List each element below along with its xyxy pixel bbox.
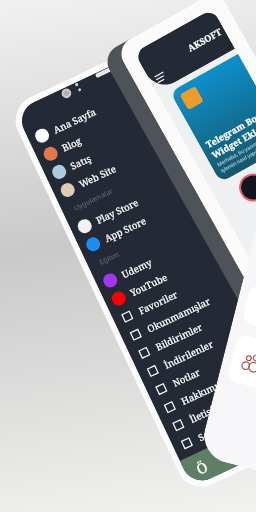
button[interactable]: Blog — [34, 70, 214, 169]
button[interactable]: Telegram Bot Widget Eklenti — [170, 54, 256, 183]
staticText: İndirilenler — [162, 337, 215, 372]
button[interactable]: Web Site — [51, 106, 231, 205]
staticText: Play Store — [94, 196, 141, 227]
button[interactable]: İletişim — [161, 341, 256, 440]
staticText: İletişim — [188, 399, 225, 426]
staticText: Bildirimler — [153, 320, 205, 354]
staticText: Blog — [60, 134, 83, 155]
button[interactable]: Hakkımızda — [153, 323, 256, 422]
staticText: Telegram Bot Widget Eklenti — [203, 106, 256, 161]
staticText: Udemy — [119, 256, 154, 281]
button[interactable]: Ö — [180, 380, 256, 487]
button[interactable]: İndirilenler — [136, 287, 256, 386]
button[interactable]: Notlar — [144, 305, 256, 404]
staticText: YouTube — [128, 271, 170, 299]
staticText: Uygulamalar — [72, 186, 115, 213]
button[interactable]: Story — [234, 168, 256, 206]
button[interactable]: Sosyal — [170, 359, 256, 458]
staticText: Satış — [68, 151, 94, 173]
staticText: Merhaba, bu yazımızda işlemin nasıl yapı… — [216, 135, 256, 175]
button[interactable]: Open menu — [151, 68, 170, 87]
button[interactable]: Ana Sayfa — [25, 52, 206, 151]
staticText: Eğitim — [98, 250, 121, 268]
staticText: Favoriler — [136, 288, 180, 317]
button[interactable] — [227, 334, 256, 418]
staticText: Ö — [193, 457, 211, 479]
button[interactable]: Favoriler — [110, 233, 256, 332]
staticText: Sosyal — [196, 420, 228, 444]
button[interactable]: App Store — [76, 160, 256, 259]
staticText: Hakkımızda — [179, 372, 235, 408]
button[interactable] — [241, 283, 256, 359]
button[interactable]: Udemy — [93, 196, 256, 295]
button[interactable]: Okunmamışlar — [119, 251, 256, 350]
button[interactable]: Satış — [42, 88, 223, 187]
staticText: App Store — [102, 214, 149, 245]
staticText: Notlar — [171, 366, 202, 390]
staticText: AKSOFT — [185, 25, 224, 54]
staticText: Okunmamışlar — [145, 294, 213, 335]
button[interactable]: Bildirimler — [127, 269, 256, 368]
staticText: Web Site — [77, 162, 119, 191]
button[interactable]: Play Store — [68, 142, 248, 241]
button[interactable]: YouTube — [102, 215, 256, 314]
staticText: Ana Sayfa — [51, 105, 98, 136]
